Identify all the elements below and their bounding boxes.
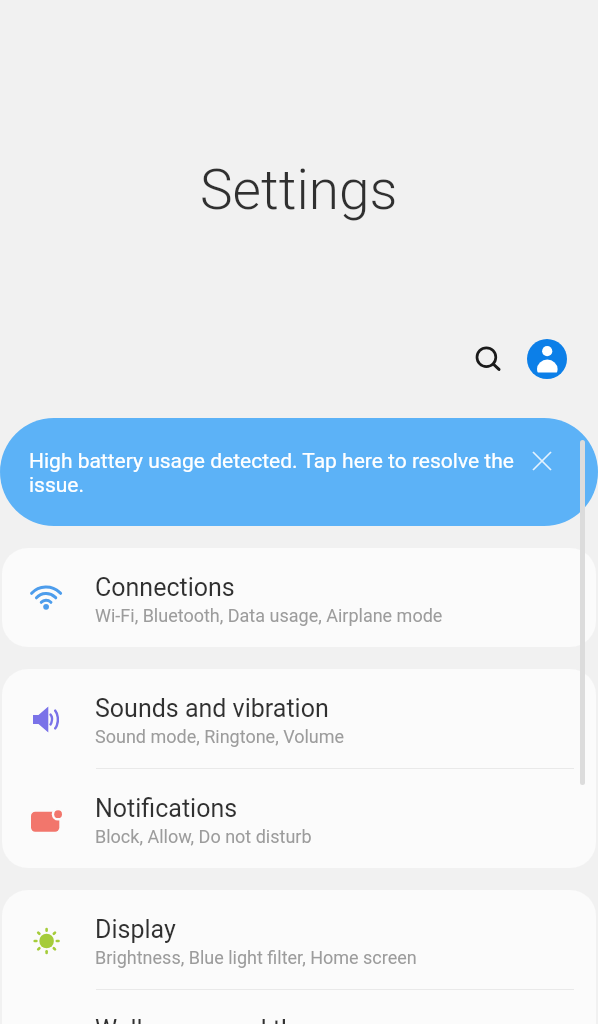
button[interactable]: Search [464, 334, 514, 384]
button[interactable]: High battery usage detected. Tap here to… [0, 418, 598, 526]
staticText: Sound mode, Ringtone, Volume [95, 726, 345, 747]
staticText: Brightness, Blue light filter, Home scre… [95, 947, 417, 968]
button[interactable]: Account [527, 339, 567, 379]
staticText: Notifications [95, 794, 238, 823]
staticText: Sounds and vibration [95, 694, 329, 723]
button[interactable]: Connections [2, 548, 596, 647]
staticText: High battery usage detected. Tap here to… [29, 449, 519, 497]
staticText: Display [95, 915, 176, 944]
button[interactable]: Sounds and vibration [2, 669, 596, 768]
button[interactable]: Display [2, 890, 596, 989]
staticText: Wallpapers and themes [95, 1015, 357, 1024]
staticText: Block, Allow, Do not disturb [95, 826, 312, 847]
staticText: Connections [95, 573, 235, 602]
staticText: Wi-Fi, Bluetooth, Data usage, Airplane m… [95, 605, 443, 626]
button[interactable]: Notifications [2, 769, 596, 868]
staticText: Settings [200, 158, 398, 222]
button[interactable]: Dismiss [522, 441, 562, 481]
button[interactable]: Wallpapers and themes [2, 990, 596, 1024]
